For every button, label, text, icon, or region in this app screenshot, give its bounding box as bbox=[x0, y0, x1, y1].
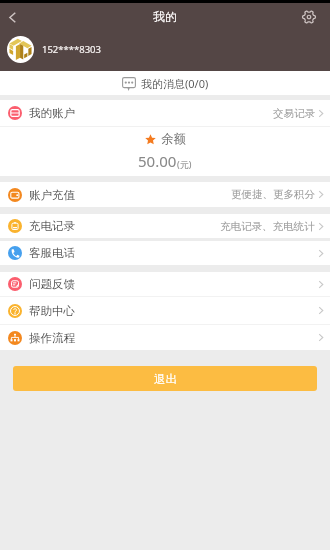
staticText: 更便捷、更多积分 bbox=[231, 188, 315, 201]
button[interactable]: 退出 bbox=[13, 366, 317, 391]
button[interactable]: Settings bbox=[296, 3, 324, 31]
button[interactable]: 我的消息(0/0) bbox=[0, 71, 330, 95]
button[interactable]: 客服电话 bbox=[0, 241, 330, 265]
staticText: 充电记录 bbox=[29, 219, 75, 233]
button[interactable]: 充电记录 bbox=[0, 214, 330, 238]
staticText: 我的消息(0/0) bbox=[141, 76, 209, 91]
staticText: 50.00 bbox=[138, 151, 177, 171]
staticText: 交易记录 bbox=[273, 107, 315, 120]
button[interactable]: 问题反馈 bbox=[0, 272, 330, 296]
staticText: (元) bbox=[177, 158, 192, 170]
button[interactable]: 账户充值 bbox=[0, 182, 330, 207]
button[interactable]: 帮助中心 bbox=[0, 297, 330, 324]
staticText: 152****8303 bbox=[42, 43, 101, 56]
staticText: 帮助中心 bbox=[29, 304, 75, 318]
staticText: 充电记录、充电统计 bbox=[220, 220, 315, 233]
staticText: 我的账户 bbox=[29, 106, 75, 120]
staticText: 我的 bbox=[153, 9, 177, 24]
staticText: 退出 bbox=[154, 372, 177, 386]
button[interactable]: 我的账户 bbox=[0, 100, 330, 126]
staticText: 问题反馈 bbox=[29, 277, 75, 291]
button[interactable]: Back bbox=[0, 3, 24, 31]
staticText: 操作流程 bbox=[29, 331, 75, 345]
staticText: 余额 bbox=[161, 131, 186, 147]
button[interactable]: 操作流程 bbox=[0, 325, 330, 350]
staticText: 客服电话 bbox=[29, 246, 75, 260]
staticText: 账户充值 bbox=[29, 188, 75, 202]
